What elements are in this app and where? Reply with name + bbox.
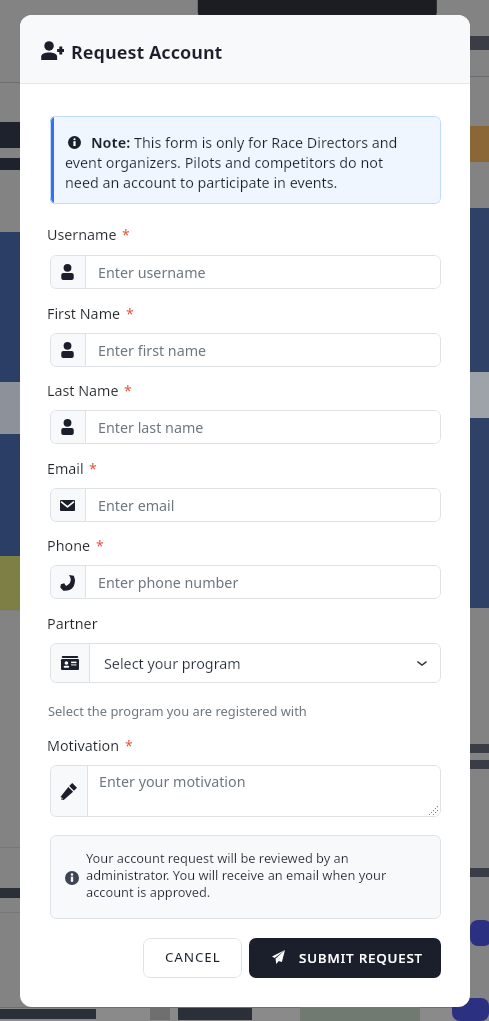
staticText: * — [124, 381, 132, 400]
staticText: * — [125, 736, 133, 755]
staticText: Enter first name — [98, 341, 207, 360]
button[interactable]: Enter your motivation — [50, 765, 441, 817]
button[interactable]: CANCEL — [143, 938, 242, 978]
staticText: account is approved. — [86, 883, 211, 900]
button[interactable]: Enter email — [50, 488, 441, 522]
staticText: * — [126, 304, 134, 323]
staticText: First Name — [47, 304, 121, 323]
staticText: need an account to participate in events… — [65, 173, 338, 192]
staticText: SUBMIT REQUEST — [299, 949, 423, 967]
staticText: Email — [47, 459, 84, 478]
staticText: Select your program — [104, 654, 241, 673]
staticText: Username — [47, 225, 117, 244]
staticText: * — [122, 225, 130, 244]
staticText: Partner — [47, 614, 98, 633]
staticText: * — [96, 536, 104, 555]
staticText: Enter username — [98, 263, 206, 282]
staticText: administrator. You will receive an email… — [86, 866, 387, 883]
staticText: Enter last name — [98, 418, 204, 437]
staticText: Phone — [47, 536, 91, 555]
staticText: Note: This form is only for Race Directo… — [91, 133, 398, 152]
button[interactable]: Enter username — [50, 255, 441, 289]
staticText: Request Account — [71, 40, 223, 65]
staticText: Select the program you are registered wi… — [48, 702, 307, 720]
button[interactable]: Send — [249, 938, 441, 978]
staticText: Your account request will be reviewed by… — [86, 849, 349, 866]
staticText: event organizers. Pilots and competitors… — [65, 153, 384, 172]
staticText: Motivation — [47, 736, 120, 755]
staticText: * — [89, 459, 97, 478]
staticText: CANCEL — [165, 948, 221, 966]
button[interactable]: Select your program — [50, 643, 441, 683]
button[interactable]: Enter first name — [50, 333, 441, 367]
staticText: Enter phone number — [98, 573, 239, 592]
staticText: Last Name — [47, 381, 119, 400]
button[interactable]: Enter phone number — [50, 565, 441, 599]
staticText: Enter your motivation — [99, 772, 246, 791]
other: Send — [272, 950, 285, 964]
staticText: Enter email — [98, 496, 175, 515]
button[interactable]: Enter last name — [50, 410, 441, 444]
